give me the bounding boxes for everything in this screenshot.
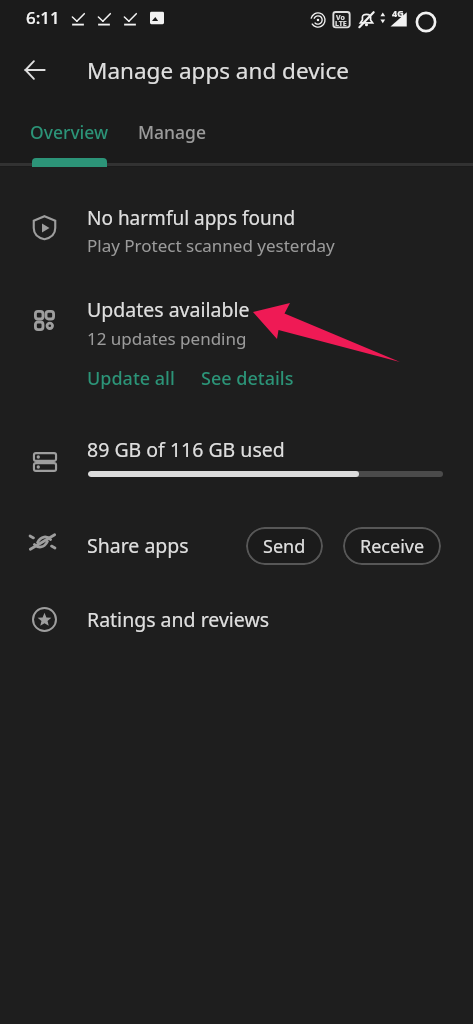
staticText: No harmful apps found bbox=[87, 205, 296, 231]
button[interactable]: Update all bbox=[75, 356, 187, 401]
staticText: Play Protect scanned yesterday bbox=[87, 234, 335, 257]
staticText: 89 GB of 116 GB used bbox=[87, 436, 285, 463]
staticText: 6:11 bbox=[26, 6, 60, 29]
button[interactable] bbox=[0, 282, 473, 352]
button[interactable]: See details bbox=[189, 356, 306, 401]
button[interactable]: Manage bbox=[126, 100, 218, 167]
button[interactable]: Send bbox=[246, 527, 323, 565]
button[interactable]: Receive bbox=[343, 527, 441, 565]
staticText: Updates available bbox=[87, 296, 250, 323]
button[interactable]: Overview bbox=[12, 100, 126, 167]
staticText: Manage bbox=[138, 120, 206, 144]
staticText: Overview bbox=[30, 120, 109, 144]
staticText: 12 updates pending bbox=[87, 327, 247, 350]
staticText: Vo bbox=[336, 13, 345, 23]
staticText: Update all bbox=[87, 366, 175, 391]
staticText: Receive bbox=[360, 534, 425, 559]
staticText: Send bbox=[263, 534, 306, 559]
button[interactable]: Back bbox=[12, 47, 57, 92]
staticText: 4G bbox=[392, 7, 404, 19]
staticText: Ratings and reviews bbox=[87, 606, 270, 633]
button[interactable]: No harmful apps found bbox=[0, 190, 473, 268]
button[interactable]: 89 GB of 116 GB used bbox=[0, 420, 473, 500]
staticText: LTE bbox=[335, 19, 347, 29]
button[interactable]: Ratings and reviews bbox=[0, 589, 473, 653]
staticText: See details bbox=[201, 366, 294, 391]
staticText: Share apps bbox=[87, 532, 189, 559]
staticText: Manage apps and device bbox=[87, 55, 349, 86]
